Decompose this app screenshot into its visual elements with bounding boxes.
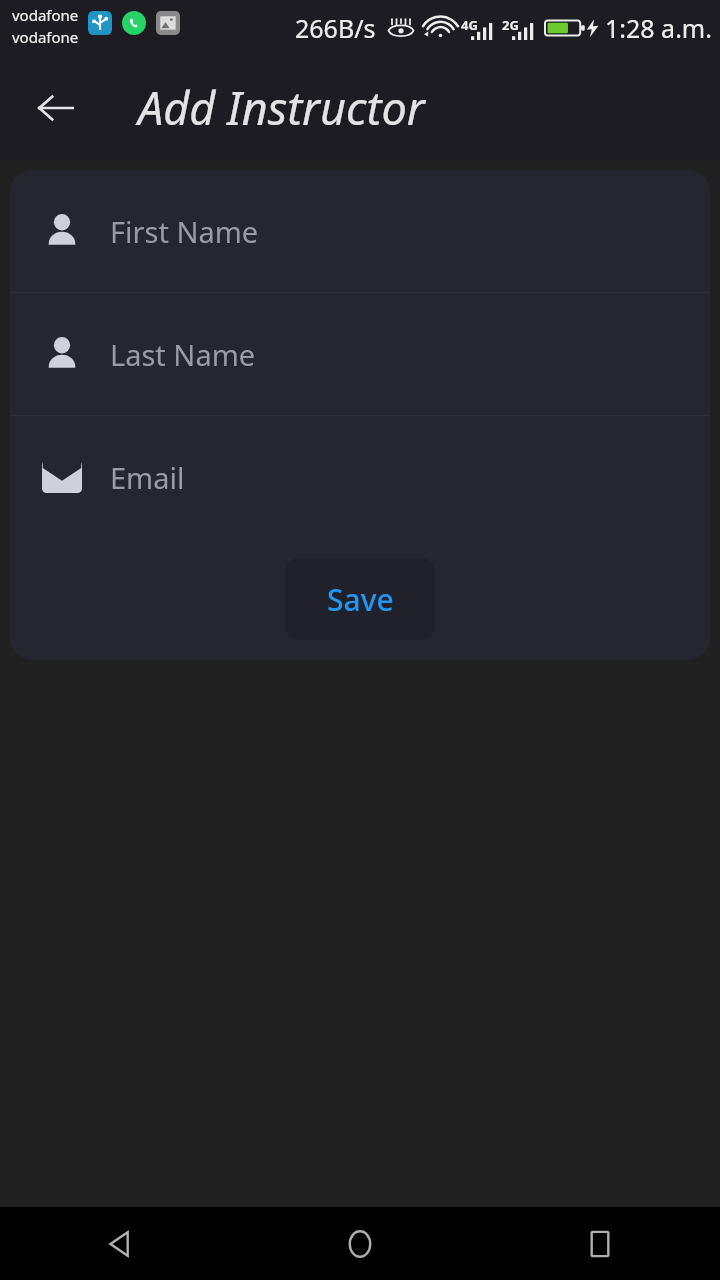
staticText: vodafone (12, 5, 79, 25)
staticText: Email (110, 458, 185, 497)
button[interactable]: First Name (10, 170, 710, 292)
button[interactable]: Save (285, 558, 435, 640)
staticText: First Name (110, 212, 259, 251)
button[interactable]: Email (10, 416, 710, 538)
button[interactable]: Recent apps (480, 1207, 720, 1280)
staticText: Save (327, 579, 394, 620)
button[interactable]: Last Name (10, 293, 710, 415)
button[interactable]: Back (20, 72, 92, 144)
staticText: 1:28 a.m. (605, 11, 712, 45)
staticText: 4G (461, 16, 478, 34)
staticText: Add Instructor (138, 77, 425, 138)
staticText: 2G (502, 16, 519, 34)
staticText: Last Name (110, 335, 256, 374)
button[interactable]: Back (0, 1207, 240, 1280)
staticText: vodafone (12, 27, 79, 47)
staticText: 266B/s (295, 11, 376, 45)
button[interactable]: Home (240, 1207, 480, 1280)
